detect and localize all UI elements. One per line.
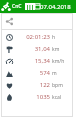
staticText: 31,04: [15, 45, 50, 53]
staticText: CnC: [12, 3, 22, 10]
staticText: 122: [15, 81, 50, 89]
button[interactable]: 02:01:23: [1, 30, 73, 42]
staticText: 15,34: [15, 57, 50, 65]
staticText: 02:01:23: [15, 33, 50, 41]
staticText: m: [52, 70, 57, 77]
staticText: kcal: [52, 94, 62, 101]
staticText: bpm: [52, 82, 63, 89]
button[interactable]: Share: [1, 13, 17, 29]
staticText: 1035: [15, 93, 50, 101]
button[interactable]: 1035: [1, 90, 73, 102]
button[interactable]: 574: [1, 66, 73, 78]
staticText: km: [52, 46, 60, 53]
button[interactable]: 122: [1, 78, 73, 90]
button[interactable]: 31,04: [1, 42, 73, 54]
staticText: h: [52, 34, 56, 41]
staticText: km/h: [52, 58, 65, 65]
staticText: 07.04.2018: [40, 3, 71, 11]
button[interactable]: 15,34: [1, 54, 73, 66]
staticText: 574: [15, 69, 50, 77]
